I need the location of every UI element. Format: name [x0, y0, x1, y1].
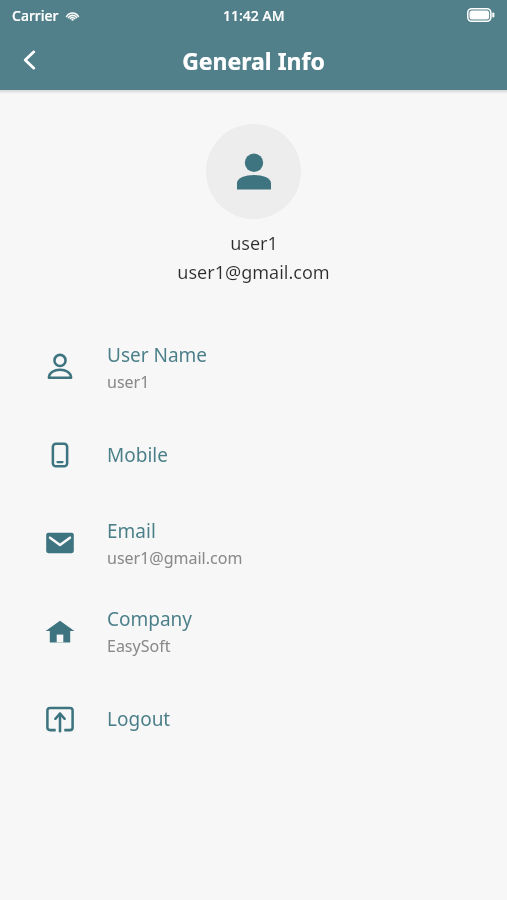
staticText: user1	[230, 231, 278, 256]
button[interactable]: User Name	[0, 323, 507, 411]
staticText: Logout	[107, 706, 171, 732]
staticText: Email	[107, 518, 156, 544]
staticText: Company	[107, 606, 193, 632]
staticText: user1@gmail.com	[107, 547, 243, 569]
staticText: user1	[107, 371, 150, 393]
staticText: User Name	[107, 342, 208, 368]
button[interactable]: Logout	[0, 675, 507, 763]
staticText: Carrier	[12, 6, 59, 25]
button[interactable]: Company	[0, 587, 507, 675]
staticText: 11:42 AM	[223, 6, 285, 25]
staticText: EasySoft	[107, 635, 171, 657]
staticText: user1@gmail.com	[177, 260, 330, 285]
staticText: Mobile	[107, 442, 168, 468]
staticText: General Info	[182, 45, 325, 76]
button[interactable]: Mobile	[0, 411, 507, 499]
button[interactable]: Back	[8, 38, 52, 82]
button[interactable]: Email	[0, 499, 507, 587]
